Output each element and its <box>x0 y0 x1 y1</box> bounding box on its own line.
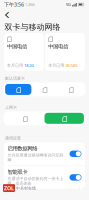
button[interactable]: SIM <box>5 84 31 95</box>
staticText: 本月已用 <box>48 63 64 68</box>
staticText: 通用设置 <box>5 136 21 141</box>
staticText: 启用数据网络 <box>7 145 37 152</box>
staticText: 允许应用通过移动网络访问互联网 <box>7 153 63 162</box>
button[interactable]: 返回 <box>0 9 13 21</box>
staticText: 中关村在线 <box>16 186 36 190</box>
button[interactable]: 智能双卡 <box>4 166 85 189</box>
staticText: 默认流量卡 <box>5 76 25 81</box>
staticText: ZOL <box>4 184 14 192</box>
staticText: 上网卡 <box>5 105 17 110</box>
staticText: 智能双卡 <box>7 169 27 175</box>
staticText: 1.2K/s <box>24 2 35 7</box>
staticText: 本月已用 <box>7 63 23 68</box>
button[interactable]: 中国电信 <box>4 33 44 71</box>
button[interactable]: 中国电信 <box>45 33 85 71</box>
staticText: 在通话中自动切换到另一张卡上网，提高体验 <box>7 176 63 186</box>
staticText: 下午3:56 <box>4 1 24 8</box>
staticText: 双卡与移动网络 <box>4 22 60 32</box>
staticText: 中国电信 <box>7 43 27 50</box>
button[interactable]: SIM <box>44 113 84 124</box>
button[interactable]: SIM <box>31 84 58 95</box>
staticText: 45.54G <box>65 63 77 68</box>
button[interactable]: 启用数据网络 <box>4 142 85 165</box>
button[interactable]: SIM <box>5 113 44 124</box>
staticText: 18.2G <box>24 63 34 68</box>
staticText: 5G <box>66 2 71 7</box>
button[interactable]: SIM <box>58 84 84 95</box>
staticText: 中国电信 <box>48 43 68 50</box>
